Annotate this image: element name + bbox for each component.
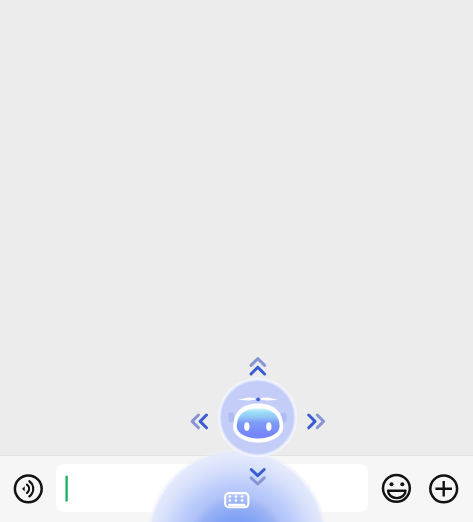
button[interactable]: Move right [300, 408, 328, 436]
button[interactable]: Scroll up [244, 352, 272, 380]
button[interactable]: Voice input [12, 472, 45, 505]
button[interactable]: More options [427, 472, 460, 505]
button[interactable]: Keyboard [220, 488, 253, 511]
button[interactable] [56, 464, 368, 512]
button[interactable]: Scroll down [244, 462, 272, 490]
button[interactable]: Move left [185, 408, 213, 436]
button[interactable]: Assistant [216, 376, 299, 459]
button[interactable]: Emoji [380, 472, 413, 505]
